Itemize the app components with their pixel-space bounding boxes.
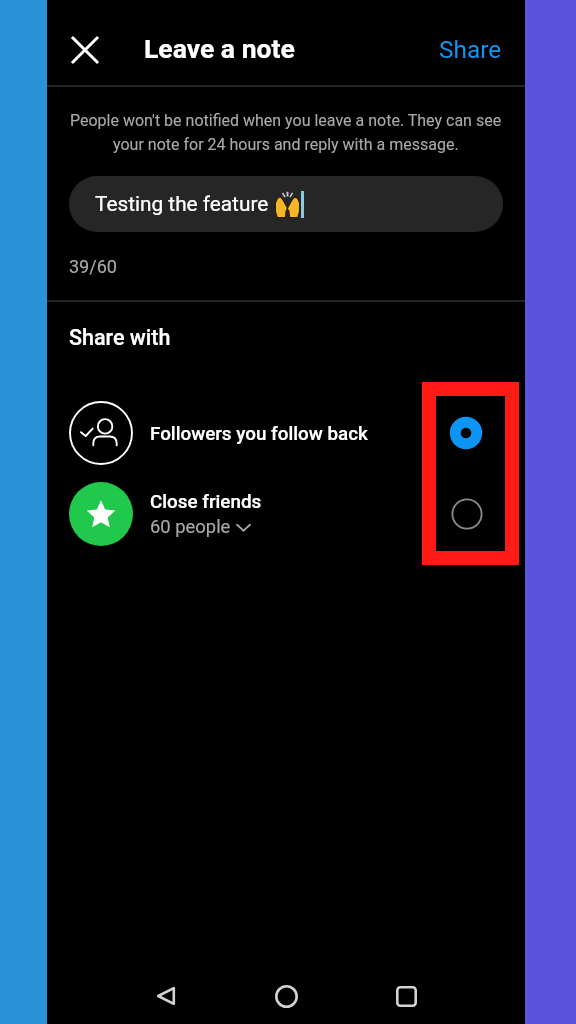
button[interactable]: Recent apps bbox=[376, 966, 436, 1024]
staticText: 60 people bbox=[150, 516, 231, 538]
button[interactable]: Back bbox=[136, 966, 196, 1024]
staticText: 39/60 bbox=[69, 256, 117, 277]
staticText: People won't be notified when you leave … bbox=[70, 111, 502, 130]
button[interactable]: Followers you follow back bbox=[47, 393, 525, 473]
staticText: Testing the feature bbox=[95, 192, 269, 216]
button[interactable]: Share bbox=[424, 23, 514, 73]
button[interactable]: Close friends, not selected bbox=[443, 490, 491, 538]
button[interactable]: Close bbox=[59, 24, 111, 76]
staticText: Close friends bbox=[150, 491, 262, 513]
button[interactable]: Testing the feature bbox=[69, 176, 503, 232]
button[interactable]: Close friends bbox=[47, 473, 525, 554]
staticText: your note for 24 hours and reply with a … bbox=[113, 135, 459, 154]
staticText: Share bbox=[439, 35, 502, 64]
staticText: Leave a note bbox=[144, 33, 295, 64]
button[interactable]: Home bbox=[256, 966, 316, 1024]
staticText: Followers you follow back bbox=[150, 423, 368, 445]
button[interactable]: Followers you follow back, selected bbox=[442, 409, 490, 457]
staticText: Share with bbox=[69, 325, 171, 350]
